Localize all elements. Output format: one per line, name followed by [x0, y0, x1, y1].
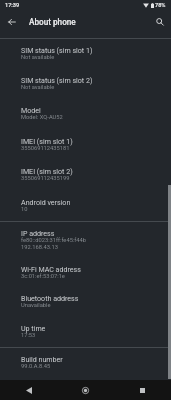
staticText: 355069112435181 [21, 145, 70, 152]
button[interactable]: Back [0, 380, 57, 400]
staticText: 192.168.43.13 [21, 244, 58, 251]
staticText: 99.0.A.8.45 [21, 363, 51, 370]
staticText: SIM status (sim slot 2) [21, 76, 93, 84]
staticText: IMEI (sim slot 1) [21, 137, 73, 145]
button[interactable]: IP address [0, 222, 171, 258]
button[interactable]: Up time [0, 317, 171, 347]
staticText: Model [21, 106, 41, 114]
button[interactable]: IMEI (sim slot 2) [0, 160, 171, 191]
staticText: Build number [21, 355, 63, 363]
button[interactable]: Build number [0, 348, 171, 378]
staticText: 10 [21, 206, 28, 213]
staticText: 355069112435199 [21, 175, 70, 182]
staticText: Wi-Fi MAC address [21, 265, 81, 273]
staticText: fe80::d023:31ff:fe45:f44b [21, 237, 86, 244]
button[interactable]: Search [149, 11, 171, 33]
staticText: Not available [21, 84, 55, 91]
staticText: IMEI (sim slot 2) [21, 167, 73, 175]
button[interactable]: IMEI (sim slot 1) [0, 130, 171, 160]
button[interactable]: Home [57, 380, 114, 400]
staticText: Up time [21, 324, 46, 332]
button[interactable]: Model [0, 99, 171, 130]
staticText: SIM status (sim slot 1) [21, 46, 93, 54]
staticText: 78% [155, 2, 166, 9]
staticText: Not available [21, 54, 55, 61]
button[interactable]: SIM status (sim slot 1) [0, 39, 171, 69]
button[interactable]: Recent apps [114, 380, 171, 400]
staticText: Model: XQ-AU52 [21, 114, 63, 121]
button[interactable]: Wi-Fi MAC address [0, 258, 171, 287]
staticText: 3c:01:ef:53:07:1e [21, 273, 65, 280]
button[interactable]: SIM status (sim slot 2) [0, 69, 171, 99]
staticText: IP address [21, 229, 55, 237]
staticText: 17:53 [21, 332, 36, 339]
staticText: Android version [21, 198, 71, 206]
staticText: About phone [29, 17, 76, 27]
button[interactable]: Android version [0, 191, 171, 221]
button[interactable]: Bluetooth address [0, 287, 171, 317]
button[interactable]: Navigate up [0, 11, 24, 33]
staticText: Unavailable [21, 302, 51, 309]
staticText: Bluetooth address [21, 294, 79, 302]
staticText: 17:39 [5, 2, 20, 9]
